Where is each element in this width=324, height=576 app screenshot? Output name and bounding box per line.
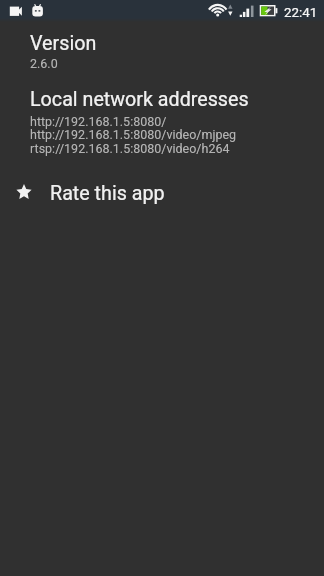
staticText: Version bbox=[30, 32, 97, 55]
staticText: Rate this app bbox=[50, 182, 165, 205]
button[interactable]: Local network addresses bbox=[0, 80, 324, 162]
staticText: 2.6.0 bbox=[30, 56, 58, 71]
staticText: 22:41 bbox=[284, 5, 318, 21]
staticText: Local network addresses bbox=[30, 88, 249, 111]
button[interactable]: Rate this app bbox=[0, 174, 324, 212]
button[interactable]: Version bbox=[0, 22, 324, 74]
other: Rate this app bbox=[16, 184, 32, 199]
staticText: http://192.168.1.5:8080/ http://192.168.… bbox=[30, 114, 237, 156]
